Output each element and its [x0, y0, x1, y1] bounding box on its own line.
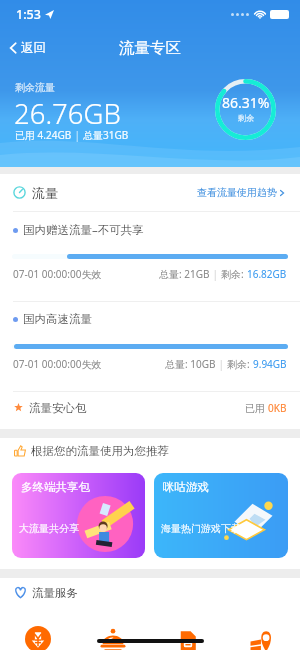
staticText: 07-01 00:00:00失效 — [13, 267, 102, 281]
button[interactable]: 返回 — [0, 33, 56, 63]
staticText: 大流量共分享 — [19, 522, 79, 535]
staticText: 返回 — [21, 40, 46, 56]
button[interactable]: 流量安心包 — [0, 392, 300, 429]
staticText: 剩余: — [221, 267, 247, 281]
button[interactable]: 多终端共享包 — [12, 473, 145, 558]
staticText: 07-01 00:00:00失效 — [13, 357, 102, 371]
staticText: 剩余 — [238, 113, 254, 123]
staticText: 查看流量使用趋势 — [197, 186, 277, 199]
staticText: 国内高速流量 — [23, 312, 92, 326]
staticText: 咪咕游戏 — [163, 480, 209, 494]
staticText: 剩余流量 — [15, 81, 55, 94]
staticText: | — [210, 267, 221, 281]
button[interactable]: 办理套餐 — [170, 626, 206, 650]
staticText: 已用 — [245, 401, 268, 415]
button[interactable]: 流量充值 — [95, 626, 131, 650]
button[interactable]: 国内高速流量 — [0, 302, 300, 391]
staticText: 剩余: — [227, 357, 253, 371]
staticText: 0KB — [268, 401, 287, 415]
button[interactable]: 充值交费 — [20, 626, 56, 650]
staticText: 多终端共享包 — [21, 480, 90, 494]
staticText: 总量: 21GB — [159, 267, 210, 281]
staticText: 国内赠送流量–不可共享 — [23, 222, 144, 238]
staticText: 根据您的流量使用为您推荐 — [31, 444, 169, 458]
staticText: | — [72, 128, 83, 142]
staticText: | — [216, 357, 227, 371]
staticText: 86.31% — [222, 93, 270, 112]
staticText: 16.82GB — [247, 267, 287, 281]
staticText: 流量安心包 — [29, 401, 87, 415]
staticText: 已用 4.24GB — [15, 128, 72, 142]
button[interactable]: 查看流量使用趋势 — [193, 180, 290, 205]
staticText: 1:53 — [16, 6, 41, 23]
staticText: 流量 — [32, 185, 58, 201]
button[interactable]: 国内赠送流量–不可共享 — [0, 212, 300, 301]
staticText: 海量热门游戏下载 — [161, 522, 241, 535]
staticText: 9.94GB — [253, 357, 287, 371]
staticText: 26.76GB — [14, 95, 121, 132]
button[interactable]: 营业厅 — [245, 626, 281, 650]
staticText: 流量专区 — [119, 38, 181, 58]
staticText: 流量服务 — [32, 586, 78, 600]
staticText: 总量: 10GB — [165, 357, 216, 371]
staticText: 总量31GB — [83, 128, 129, 142]
button[interactable]: 咪咕游戏 — [154, 473, 288, 558]
